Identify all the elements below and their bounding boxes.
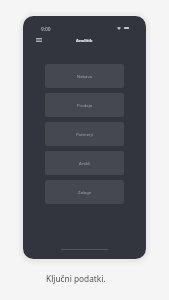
button[interactable]: Nabava [45, 64, 124, 88]
staticText: 9:00 [41, 26, 51, 33]
staticText: Zaloge [78, 190, 92, 196]
button[interactable]: Partnerji [45, 122, 124, 146]
staticText: Prodaja [77, 103, 93, 109]
button[interactable]: Zaloge [45, 180, 124, 204]
button[interactable]: Menu [31, 34, 47, 46]
button[interactable]: Artikli [45, 151, 124, 175]
staticText: Partnerji [76, 132, 93, 138]
staticText: Nabava [77, 74, 92, 80]
staticText: Analitik [76, 38, 93, 44]
staticText: Artikli [79, 161, 91, 167]
staticText: Ključni podatki. [46, 273, 106, 284]
button[interactable]: Prodaja [45, 93, 124, 117]
